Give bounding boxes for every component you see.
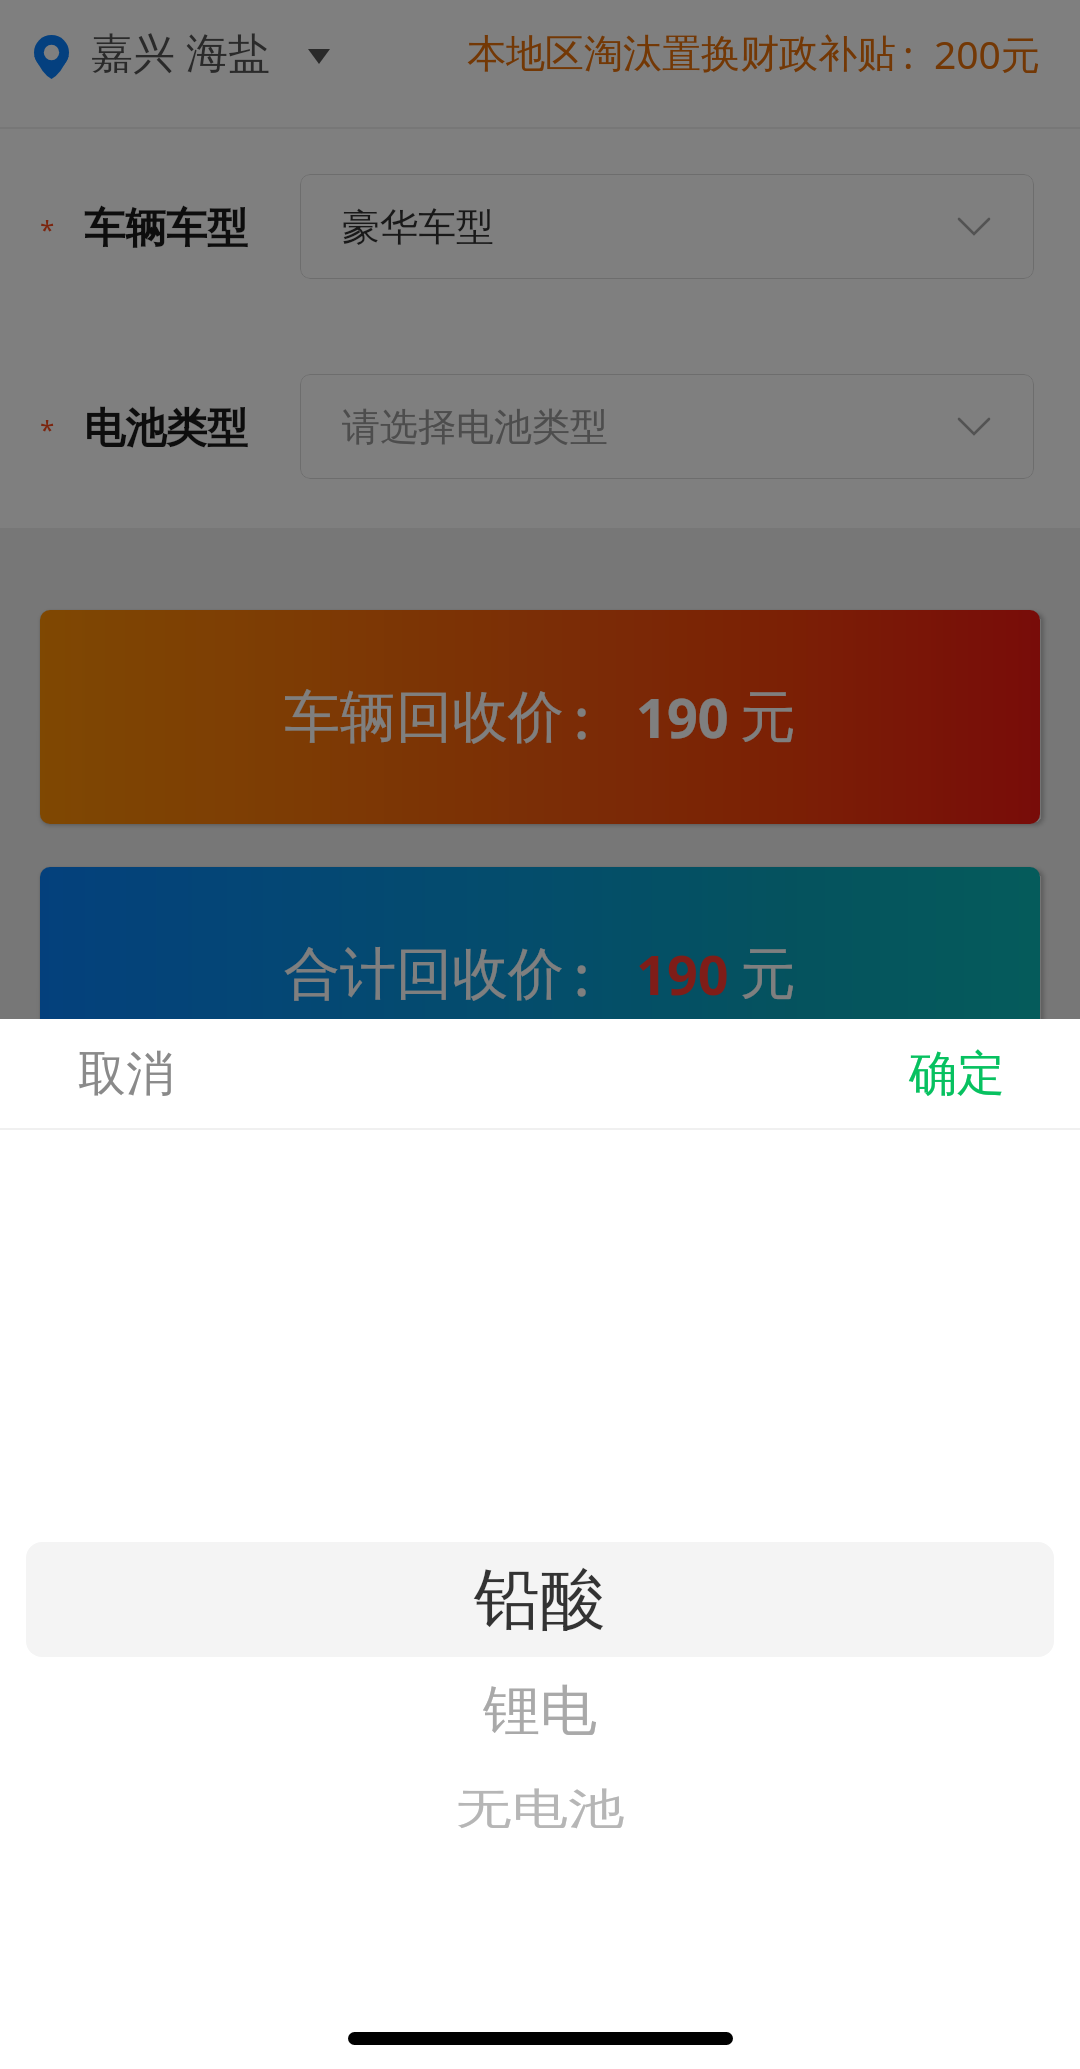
staticText: 无电池 — [456, 1783, 624, 1836]
button[interactable]: 无电池 — [0, 1763, 1080, 1855]
staticText: 嘉兴 海盐 — [91, 23, 270, 80]
staticText: : — [903, 27, 914, 80]
staticText: * — [40, 411, 55, 446]
staticText: 车辆回收价 — [284, 682, 564, 753]
button[interactable]: 豪华车型 — [300, 174, 1034, 279]
button[interactable]: 确定 — [834, 1024, 1080, 1124]
staticText: 190 — [636, 680, 729, 754]
button[interactable]: 铅酸 — [0, 1542, 1080, 1657]
button[interactable]: 锂电 — [0, 1661, 1080, 1761]
staticText: 200元 — [934, 27, 1040, 80]
button[interactable]: 请选择电池类型 — [300, 374, 1034, 479]
button[interactable]: Location — [34, 28, 330, 85]
other: Expand — [959, 219, 989, 234]
staticText: : — [574, 936, 590, 1012]
staticText: 请选择电池类型 — [342, 403, 608, 451]
staticText: 本地区淘汰置换财政补贴 — [467, 29, 896, 78]
button[interactable]: 车辆回收价 — [40, 610, 1040, 824]
staticText: 电池类型 — [84, 403, 248, 455]
staticText: 豪华车型 — [342, 203, 494, 251]
staticText: 车辆车型 — [84, 203, 248, 255]
button[interactable]: 合计回收价 — [40, 867, 1040, 1081]
staticText: 铅酸 — [474, 1558, 606, 1641]
staticText: 元 — [740, 682, 796, 753]
staticText: 锂电 — [483, 1677, 597, 1745]
button[interactable]: 取消 — [0, 1024, 252, 1124]
other: Expand — [959, 419, 989, 434]
staticText: 合计回收价 — [284, 939, 564, 1010]
staticText: 190 — [636, 937, 729, 1011]
staticText: 确定 — [909, 1044, 1005, 1104]
other: Location — [34, 35, 69, 79]
staticText: : — [574, 679, 590, 755]
staticText: * — [40, 211, 55, 246]
staticText: 元 — [740, 939, 796, 1010]
staticText: 取消 — [78, 1044, 174, 1104]
